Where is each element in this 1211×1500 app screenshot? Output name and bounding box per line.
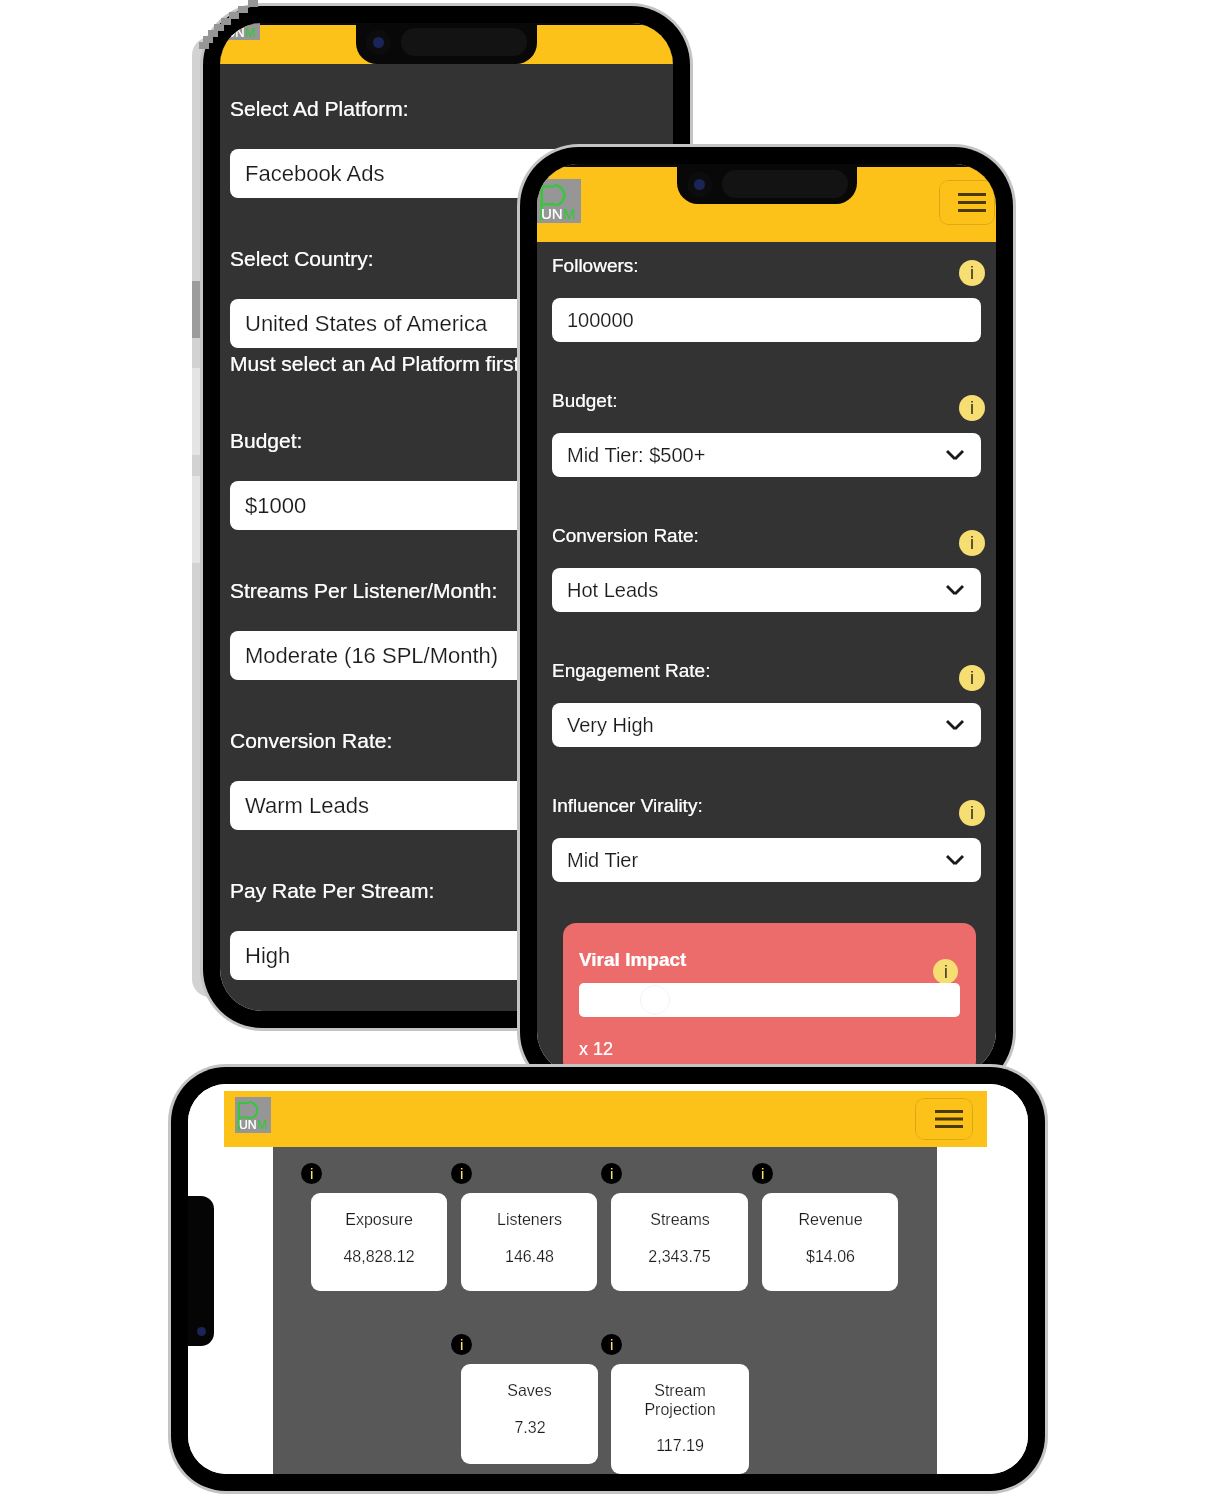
button[interactable]: Menu <box>915 1098 973 1140</box>
staticText: Mid Tier <box>567 849 639 871</box>
button[interactable]: Stream Projection <box>611 1364 749 1474</box>
staticText: UN <box>239 1118 257 1132</box>
button[interactable]: Info <box>752 1163 773 1184</box>
button[interactable]: Info <box>959 665 985 691</box>
staticText: i <box>970 803 975 823</box>
button[interactable]: Info <box>933 959 958 984</box>
staticText: Conversion Rate: <box>230 729 393 752</box>
staticText: Select Country: <box>230 247 374 270</box>
staticText: Revenue <box>798 1211 863 1229</box>
staticText: 100000 <box>567 309 634 331</box>
staticText: Viral Impact <box>579 949 687 970</box>
button[interactable]: Viral impact slider <box>579 983 960 1017</box>
button[interactable]: Info <box>959 800 985 826</box>
button[interactable]: PUNM logo <box>537 179 581 223</box>
staticText: Very High <box>567 714 654 736</box>
staticText: Mid Tier: $500+ <box>567 444 706 466</box>
staticText: i <box>761 1166 765 1182</box>
staticText: 117.19 <box>656 1437 704 1455</box>
button[interactable]: 100000 <box>552 298 981 342</box>
staticText: i <box>610 1337 614 1353</box>
staticText: High <box>245 943 291 968</box>
button[interactable]: Info <box>959 530 985 556</box>
staticText: i <box>970 533 975 553</box>
staticText: 146.48 <box>505 1248 554 1266</box>
button[interactable]: Facebook Ads <box>230 149 663 198</box>
staticText: Saves <box>507 1382 552 1400</box>
button[interactable]: Hot Leads <box>552 568 981 612</box>
button[interactable]: Very High <box>552 703 981 747</box>
staticText: Conversion Rate: <box>552 525 699 546</box>
staticText: $14.06 <box>806 1248 855 1266</box>
button[interactable]: Revenue <box>762 1193 898 1291</box>
staticText: i <box>970 263 975 283</box>
staticText: i <box>460 1337 464 1353</box>
staticText: Streams <box>650 1211 710 1229</box>
button[interactable]: Info <box>959 395 985 421</box>
staticText: i <box>970 398 975 418</box>
staticText: Stream Projection <box>644 1382 716 1418</box>
staticText: Moderate (16 SPL/Month) <box>245 643 499 668</box>
staticText: Exposure <box>345 1211 413 1229</box>
staticText: i <box>460 1166 464 1182</box>
staticText: Influencer Virality: <box>552 795 703 816</box>
staticText: i <box>610 1166 614 1182</box>
button[interactable]: Info <box>959 260 985 286</box>
button[interactable]: Streams <box>611 1193 748 1291</box>
staticText: i <box>970 668 975 688</box>
button[interactable]: Listeners <box>461 1193 597 1291</box>
staticText: Pay Rate Per Stream: <box>230 879 435 902</box>
button[interactable]: Moderate (16 SPL/Month) <box>230 631 663 680</box>
staticText: Listeners <box>497 1211 562 1229</box>
button[interactable]: Menu <box>939 180 995 225</box>
button[interactable]: PUNM logo <box>235 1097 271 1133</box>
staticText: 48,828.12 <box>343 1248 415 1266</box>
staticText: 2,343.75 <box>648 1248 711 1266</box>
staticText: Budget: <box>230 429 303 452</box>
button[interactable]: Info <box>601 1163 622 1184</box>
staticText: Budget: <box>552 390 618 411</box>
staticText: i <box>310 1166 314 1182</box>
staticText: Engagement Rate: <box>552 660 711 681</box>
staticText: M <box>245 25 256 39</box>
staticText: UN <box>541 205 563 222</box>
staticText: i <box>944 962 948 982</box>
button[interactable]: Warm Leads <box>230 781 663 830</box>
staticText: Select Ad Platform: <box>230 97 409 120</box>
staticText: Must select an Ad Platform first <box>230 352 520 375</box>
staticText: Facebook Ads <box>245 161 385 186</box>
button[interactable]: $1000 <box>230 481 663 530</box>
staticText: M <box>563 205 576 222</box>
button[interactable]: United States of America <box>230 299 663 348</box>
staticText: United States of America <box>245 311 488 336</box>
staticText: Hot Leads <box>567 579 659 601</box>
button[interactable]: Info <box>301 1163 322 1184</box>
staticText: UN <box>226 25 245 39</box>
staticText: M <box>257 1118 268 1132</box>
staticText: x 12 <box>579 1039 614 1059</box>
button[interactable]: PUNM logo <box>222 23 260 40</box>
button[interactable]: Info <box>451 1334 472 1355</box>
staticText: Followers: <box>552 255 639 276</box>
button[interactable]: High <box>230 931 663 980</box>
staticText: $1000 <box>245 493 307 518</box>
button[interactable]: Saves <box>461 1364 598 1464</box>
staticText: Warm Leads <box>245 793 369 818</box>
button[interactable]: Info <box>451 1163 472 1184</box>
staticText: 7.32 <box>514 1419 546 1437</box>
button[interactable]: Exposure <box>311 1193 447 1291</box>
staticText: Streams Per Listener/Month: <box>230 579 498 602</box>
button[interactable]: Mid Tier: $500+ <box>552 433 981 477</box>
button[interactable]: Mid Tier <box>552 838 981 882</box>
button[interactable]: Info <box>601 1334 622 1355</box>
